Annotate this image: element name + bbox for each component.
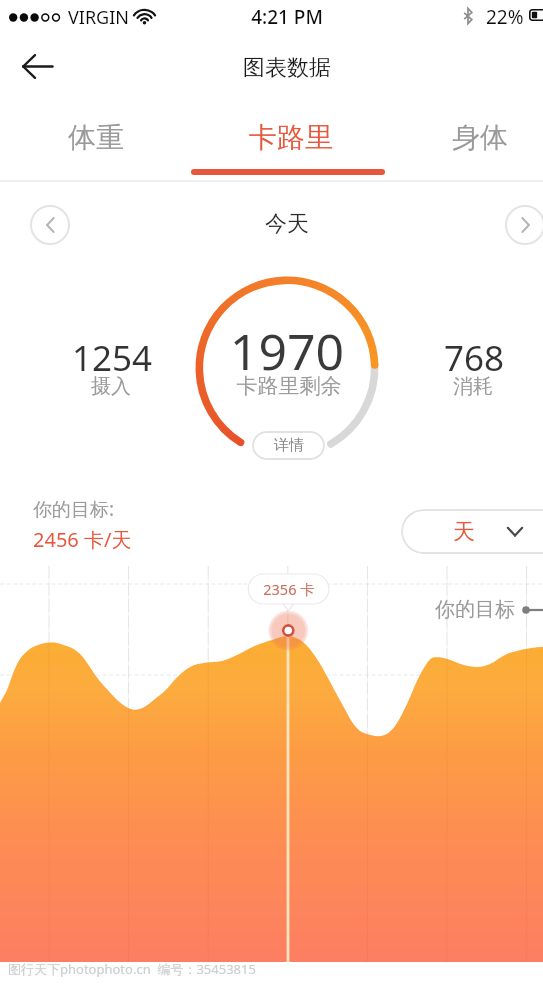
button[interactable]: Previous day [30, 205, 70, 245]
staticText: 体重 [68, 120, 124, 155]
staticText: VIRGIN [68, 5, 129, 30]
staticText: 卡路里剩余 [89, 373, 489, 399]
staticText: 图行天下photophoto.cn 编号：35453815 [8, 960, 256, 978]
staticText: 1254 [12, 334, 212, 382]
staticText: 你的目标 [435, 597, 515, 622]
button[interactable]: 体重 [0, 106, 192, 168]
button[interactable]: 身体 [384, 106, 543, 168]
staticText: 1970 [87, 317, 487, 385]
staticText: 卡路里 [249, 120, 333, 155]
button[interactable]: Back [8, 37, 66, 95]
staticText: 2356 卡 [229, 579, 349, 599]
staticText: 你的目标: [33, 496, 115, 522]
button[interactable]: Next day [505, 205, 543, 245]
staticText: 天 [453, 518, 475, 546]
button[interactable]: 详情 [252, 431, 325, 460]
staticText: 身体 [452, 120, 508, 155]
staticText: 4:21 PM [87, 4, 487, 30]
staticText: 22% [486, 4, 524, 30]
staticText: 消耗 [404, 374, 542, 399]
staticText: 2456 卡/天 [33, 526, 132, 553]
button[interactable]: 天 [401, 509, 543, 554]
staticText: 图表数据 [87, 54, 487, 82]
staticText: 摄入 [11, 374, 211, 399]
button[interactable]: 卡路里 [195, 106, 387, 168]
staticText: 今天 [87, 210, 487, 238]
staticText: 768 [405, 334, 543, 382]
staticText: 详情 [274, 436, 304, 455]
